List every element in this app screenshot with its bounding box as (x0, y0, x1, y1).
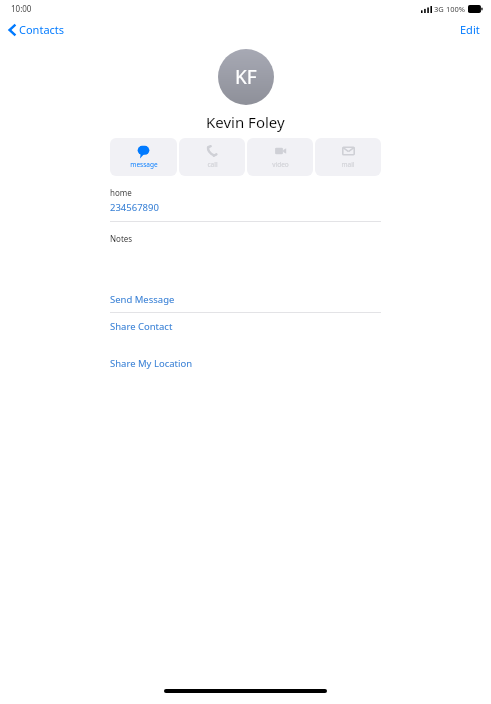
staticText: message (130, 160, 158, 169)
staticText: 10:00 (11, 3, 32, 14)
button[interactable]: video (247, 138, 313, 176)
button[interactable]: Edit (449, 19, 491, 40)
button[interactable]: call (179, 138, 245, 176)
button[interactable]: Share My Location (110, 357, 381, 370)
button[interactable]: Contacts (0, 19, 73, 40)
staticText: Contacts (19, 22, 65, 37)
staticText: Share My Location (110, 357, 193, 370)
staticText: home (110, 187, 132, 198)
staticText: 100% (446, 4, 466, 14)
button[interactable]: mail (315, 138, 381, 176)
staticText: Edit (460, 22, 480, 37)
button[interactable]: home (110, 187, 381, 214)
staticText: Share Contact (110, 320, 173, 333)
staticText: KF (235, 64, 257, 90)
staticText: Notes (110, 233, 133, 244)
staticText: call (207, 160, 218, 169)
button[interactable]: message (110, 138, 177, 176)
staticText: Send Message (110, 293, 175, 306)
button[interactable]: Send Message (110, 293, 381, 306)
staticText: 234567890 (110, 201, 159, 214)
staticText: Kevin Foley (206, 112, 285, 132)
staticText: video (272, 160, 289, 169)
button[interactable]: Share Contact (110, 320, 381, 333)
staticText: mail (341, 160, 355, 169)
staticText: 3G (434, 4, 444, 14)
